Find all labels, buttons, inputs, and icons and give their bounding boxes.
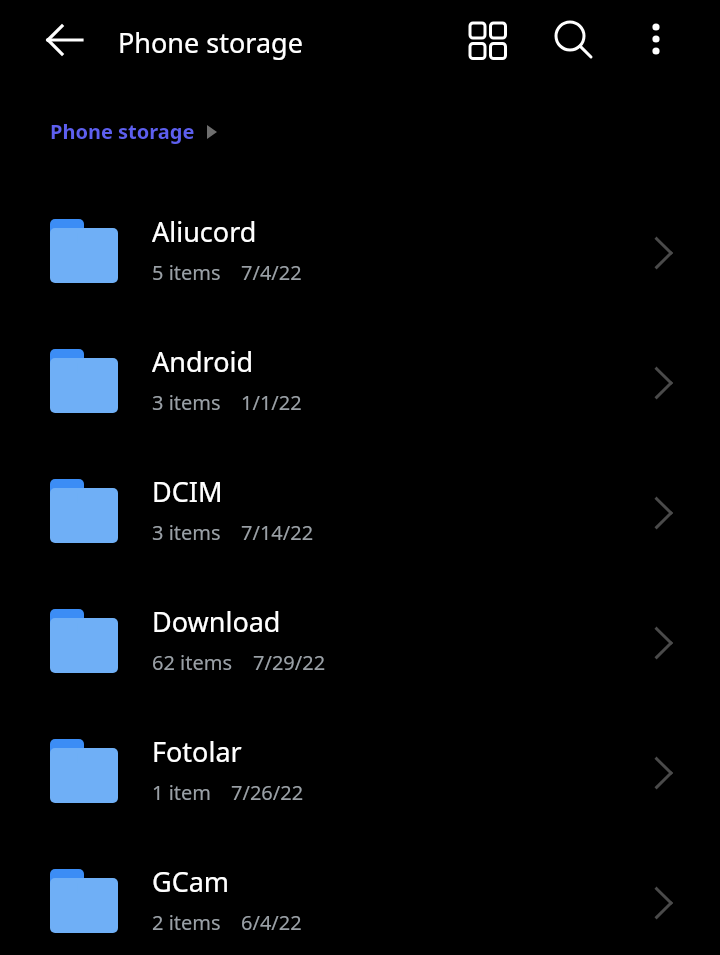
- staticText: Aliucord: [152, 213, 257, 250]
- staticText: 5 items: [152, 259, 221, 286]
- button[interactable]: Phone storage: [50, 118, 221, 145]
- staticText: Download: [152, 603, 281, 640]
- button[interactable]: Download: [0, 594, 720, 724]
- staticText: Phone storage: [118, 24, 303, 61]
- staticText: 7/14/22: [241, 519, 314, 546]
- staticText: 3 items: [152, 519, 221, 546]
- staticText: DCIM: [152, 473, 223, 510]
- button[interactable]: Back: [30, 10, 90, 70]
- staticText: Fotolar: [152, 733, 242, 770]
- button[interactable]: GCam: [0, 854, 720, 955]
- button[interactable]: Aliucord: [0, 204, 720, 334]
- staticText: 7/29/22: [253, 649, 326, 676]
- staticText: 2 items: [152, 909, 221, 936]
- button[interactable]: Change view: [456, 9, 520, 73]
- button[interactable]: More options: [626, 8, 686, 68]
- staticText: 1/1/22: [241, 389, 302, 416]
- button[interactable]: Android: [0, 334, 720, 464]
- staticText: 6/4/22: [241, 909, 302, 936]
- staticText: GCam: [152, 863, 230, 900]
- staticText: Phone storage: [50, 118, 195, 145]
- staticText: 62 items: [152, 649, 233, 676]
- staticText: 7/26/22: [231, 779, 304, 806]
- staticText: 1 item: [152, 779, 211, 806]
- staticText: Android: [152, 343, 254, 380]
- button[interactable]: Search: [540, 8, 604, 72]
- staticText: 7/4/22: [241, 259, 302, 286]
- staticText: 3 items: [152, 389, 221, 416]
- button[interactable]: Fotolar: [0, 724, 720, 854]
- button[interactable]: DCIM: [0, 464, 720, 594]
